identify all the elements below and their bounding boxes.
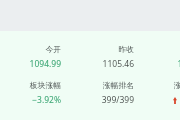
staticText: 399/399 (101, 94, 134, 106)
button[interactable] (135, 42, 180, 69)
button[interactable] (0, 77, 63, 106)
button[interactable] (135, 77, 180, 106)
staticText: 1094.99 (29, 58, 61, 70)
staticText: 涨幅排名 (102, 80, 134, 90)
button[interactable] (64, 77, 136, 106)
staticText: 板块涨幅 (29, 80, 61, 90)
staticText: 1105.46 (102, 58, 134, 70)
staticText: 昨收 (118, 44, 134, 54)
button[interactable] (0, 42, 63, 69)
button[interactable] (64, 42, 136, 69)
staticText: 1094.99 (177, 58, 180, 70)
staticText: −3.92% (32, 94, 61, 106)
staticText: 今开 (45, 44, 61, 54)
staticText: 涨跌家数 (173, 80, 180, 90)
